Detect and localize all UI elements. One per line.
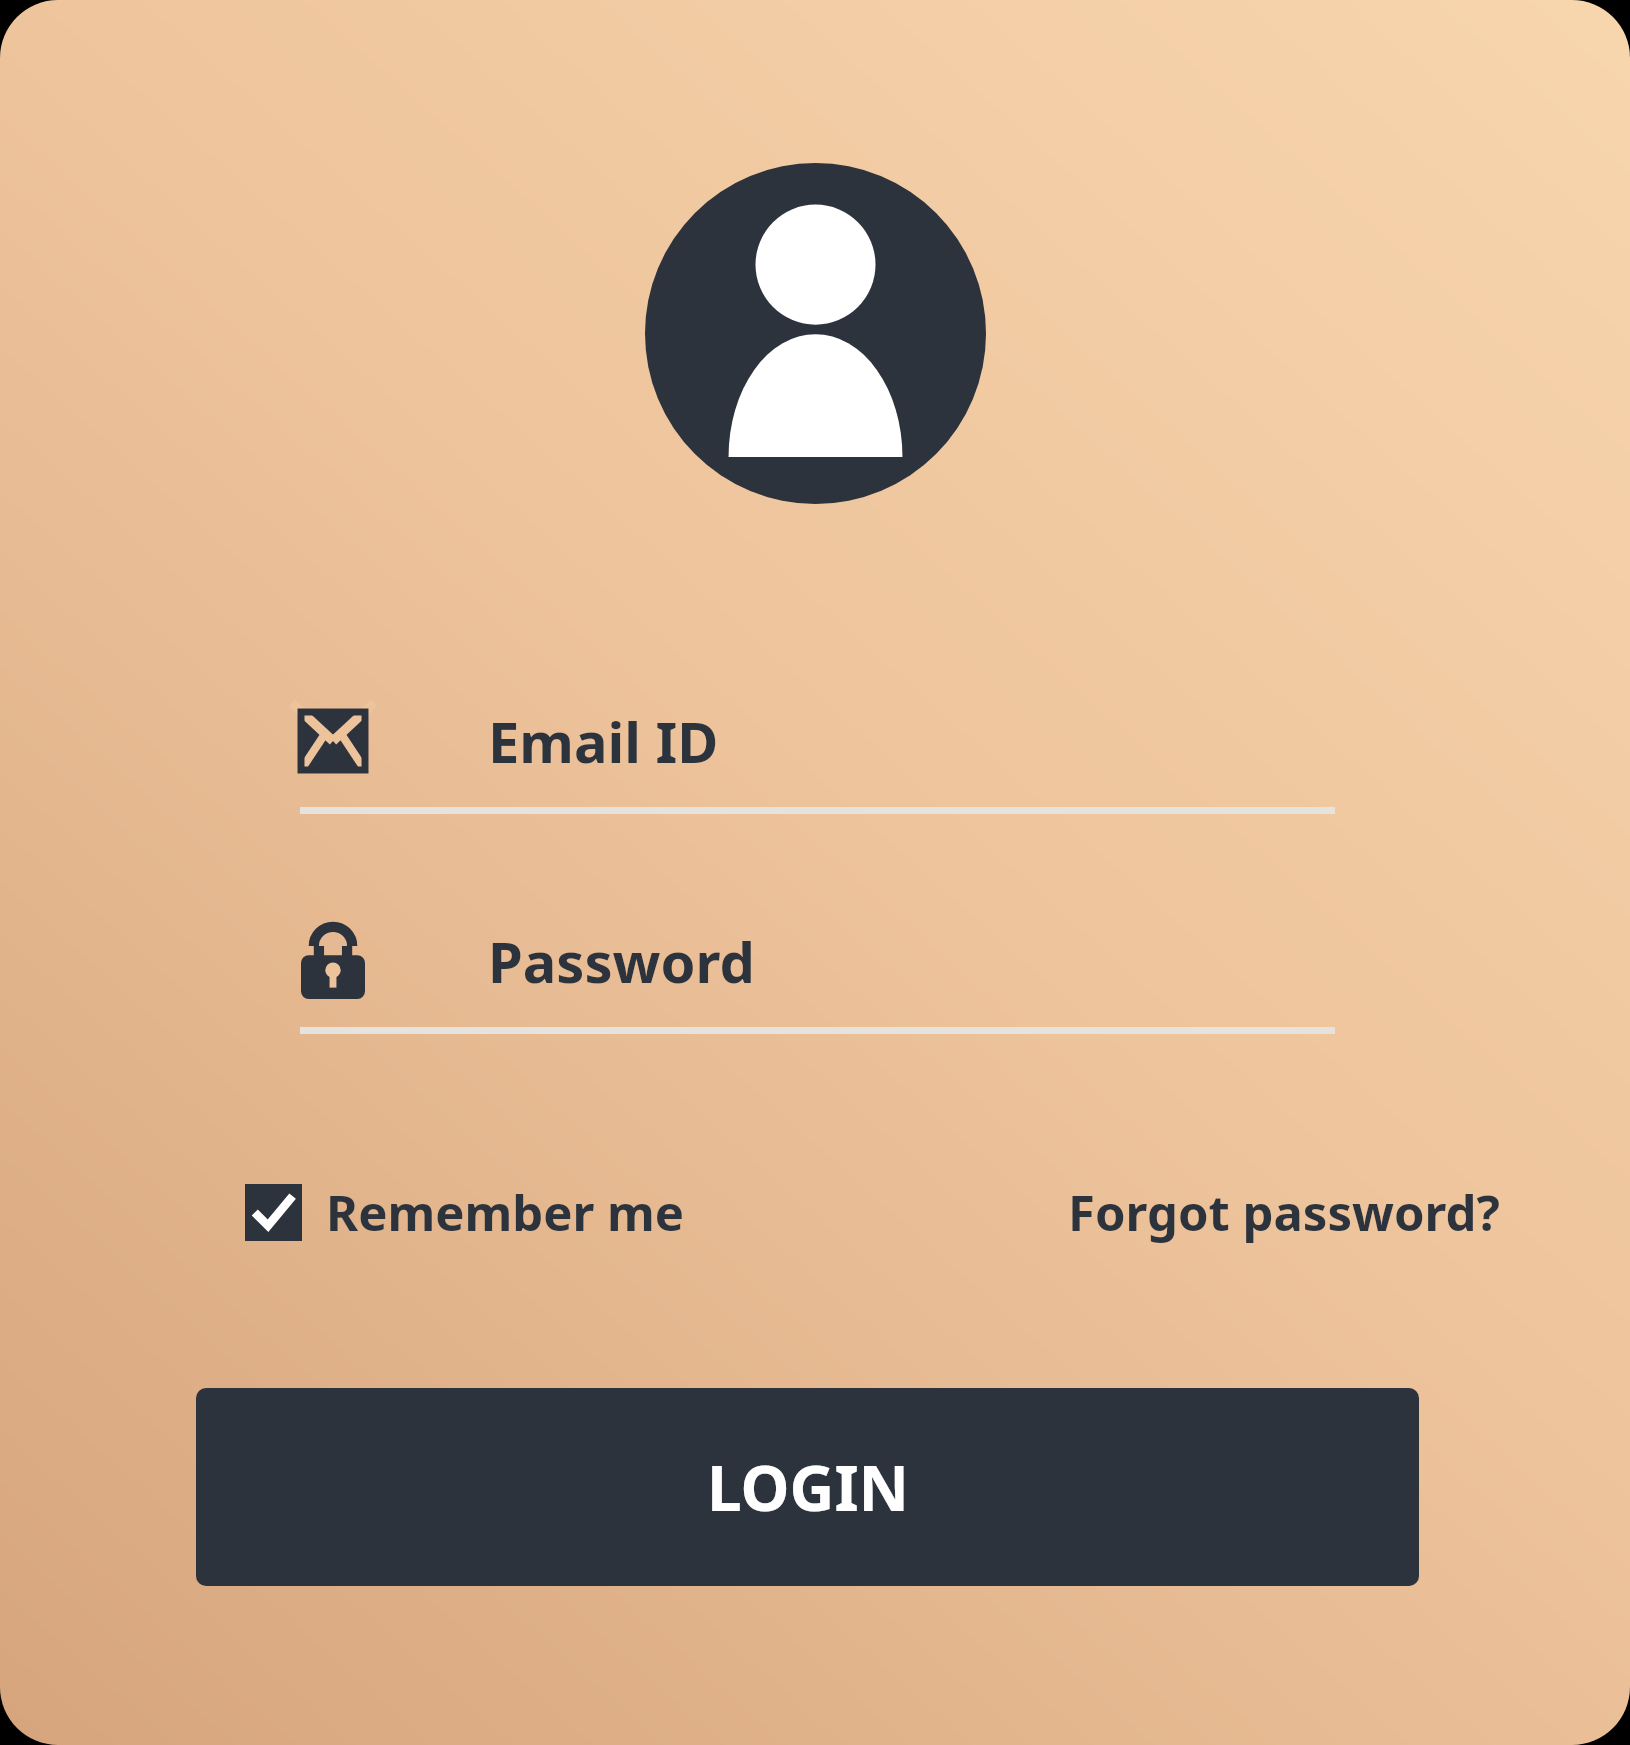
button[interactable]: Forgot password?	[1068, 1179, 1500, 1246]
staticText: Email ID	[488, 703, 719, 779]
other: Email	[300, 701, 366, 781]
button[interactable]: Remember me	[245, 1179, 685, 1246]
button[interactable]: Password	[300, 921, 1340, 1001]
staticText: Forgot password?	[1068, 1179, 1500, 1246]
button[interactable]: LOGIN	[196, 1388, 1419, 1586]
staticText: Remember me	[326, 1179, 685, 1246]
button[interactable]: Email	[300, 701, 1340, 781]
other: Password	[300, 921, 366, 1001]
other: Profile avatar	[645, 163, 986, 504]
staticText: Password	[488, 923, 755, 999]
staticText: LOGIN	[707, 1445, 909, 1529]
